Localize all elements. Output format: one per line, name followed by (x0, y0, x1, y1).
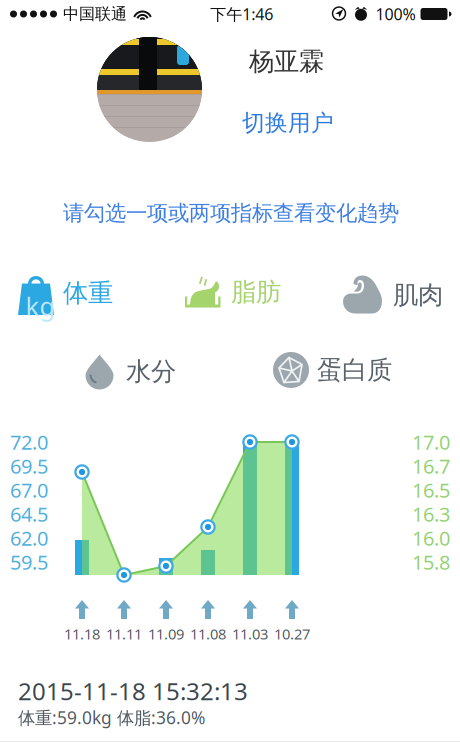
staticText: 16.7 (412, 453, 450, 479)
staticText: 67.0 (10, 477, 48, 503)
staticText: 69.5 (10, 453, 48, 479)
staticText: 肌肉 (393, 279, 443, 310)
staticText: 15.8 (412, 549, 450, 575)
staticText: 72.0 (10, 429, 48, 455)
staticText: 请勾选一项或两项指标查看变化趋势 (63, 200, 399, 226)
staticText: 11.03 (232, 624, 268, 643)
button[interactable]: 水分 (81, 353, 176, 390)
staticText: 16.0 (412, 525, 450, 551)
button[interactable]: 蛋白质 (273, 352, 392, 388)
staticText: kg (25, 289, 55, 323)
staticText: 切换用户 (242, 109, 334, 137)
staticText: 64.5 (10, 501, 48, 527)
staticText: 体重:59.0kg 体脂:36.0% (18, 706, 205, 729)
staticText: 62.0 (10, 525, 48, 551)
staticText: 11.09 (148, 624, 184, 643)
staticText: 杨亚霖 (249, 46, 324, 77)
button[interactable]: 肌肉 (341, 274, 443, 316)
staticText: 下午1:46 (210, 3, 273, 25)
button[interactable]: 切换用户 (236, 103, 340, 143)
staticText: 蛋白质 (317, 354, 392, 385)
staticText: 2015-11-18 15:32:13 (18, 675, 248, 707)
staticText: 脂肪 (231, 276, 281, 307)
staticText: 10.27 (274, 624, 310, 643)
staticText: 100% (375, 3, 415, 25)
staticText: 体重 (63, 277, 113, 308)
staticText: 16.5 (412, 477, 450, 503)
staticText: 11.11 (106, 624, 142, 643)
staticText: 水分 (126, 356, 176, 387)
button[interactable]: kg (17, 271, 113, 315)
staticText: 16.3 (412, 501, 450, 527)
staticText: 中国联通 (63, 4, 127, 24)
staticText: 11.08 (190, 624, 226, 643)
button[interactable]: 脂肪 (183, 274, 281, 310)
staticText: 11.18 (64, 624, 100, 643)
staticText: 17.0 (412, 429, 450, 455)
staticText: 59.5 (10, 549, 48, 575)
